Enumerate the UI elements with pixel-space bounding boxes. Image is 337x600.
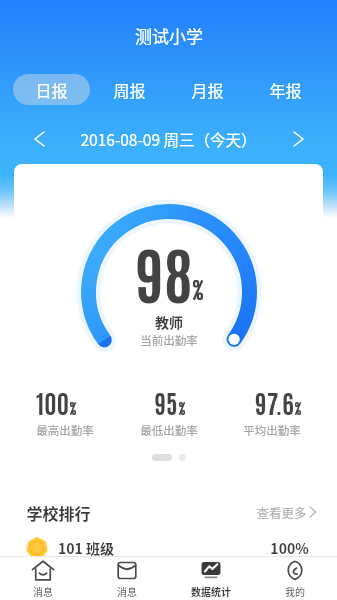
button[interactable]: 月报 <box>168 74 246 105</box>
staticText: 101 班级 <box>58 538 114 558</box>
staticText: 95 <box>154 386 178 418</box>
staticText: 数据统计 <box>191 584 231 598</box>
staticText: 消息 <box>33 584 53 598</box>
staticText: 学校排行 <box>26 501 91 524</box>
staticText: 100 <box>36 386 69 418</box>
staticText: 教师 <box>155 312 183 332</box>
staticText: 我的 <box>285 584 305 598</box>
button[interactable]: 周报 <box>90 74 168 105</box>
button[interactable]: Next day <box>283 124 313 154</box>
staticText: 100% <box>270 538 309 558</box>
button[interactable]: 消息 <box>85 557 169 600</box>
staticText: 97.6 <box>255 386 294 418</box>
staticText: 最高出勤率 <box>36 422 94 439</box>
button[interactable]: 我的 <box>253 557 337 600</box>
staticText: 测试小学 <box>135 23 203 48</box>
staticText: 2016-08-09 周三（今天） <box>80 128 257 150</box>
staticText: 月报 <box>191 78 224 101</box>
staticText: 当前出勤率 <box>140 332 198 349</box>
staticText: 最低出勤率 <box>140 422 198 439</box>
staticText: 周报 <box>113 78 146 101</box>
staticText: 查看更多 <box>256 503 307 521</box>
staticText: 消息 <box>117 584 137 598</box>
button[interactable]: 消息 <box>0 557 85 600</box>
staticText: 年报 <box>269 78 302 101</box>
button[interactable]: 数据统计 <box>169 557 253 600</box>
button[interactable]: 101 班级 <box>26 534 309 562</box>
button[interactable]: 日报 <box>13 74 90 105</box>
button[interactable]: 查看更多 <box>256 503 316 521</box>
button[interactable]: 年报 <box>246 74 324 105</box>
staticText: 98 <box>135 232 193 312</box>
staticText: 日报 <box>35 78 68 101</box>
staticText: 平均出勤率 <box>243 422 301 439</box>
button[interactable]: Previous day <box>24 124 54 154</box>
